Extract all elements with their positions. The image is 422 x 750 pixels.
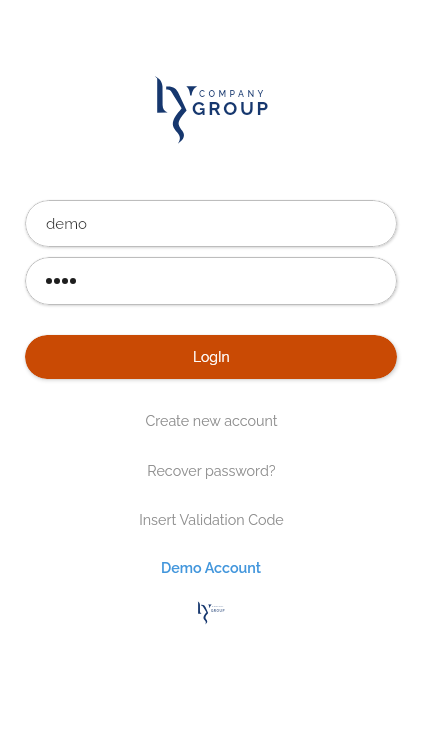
button[interactable]: demo (25, 200, 397, 247)
button[interactable]: Create new account (0, 396, 422, 446)
staticText: Create new account (145, 413, 278, 430)
button[interactable]: LogIn (25, 335, 397, 379)
staticText: Recover password? (147, 463, 276, 480)
staticText: Demo Account (161, 560, 261, 577)
staticText: GROUP (192, 98, 271, 120)
staticText: COMPANY (212, 606, 224, 608)
button[interactable]: Insert Validation Code (0, 496, 422, 544)
staticText: Insert Validation Code (139, 512, 284, 529)
button[interactable]: Demo Account (0, 544, 422, 592)
staticText: COMPANY (199, 89, 267, 99)
staticText: demo (46, 215, 87, 233)
button[interactable]: Recover password? (0, 446, 422, 496)
staticText: LogIn (193, 349, 230, 365)
staticText: GROUP (211, 609, 225, 613)
button[interactable] (25, 257, 397, 305)
